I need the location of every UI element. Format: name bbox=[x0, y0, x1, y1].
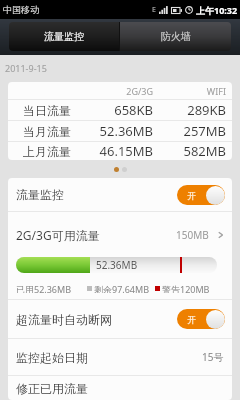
staticText: 流量监控 bbox=[44, 30, 84, 43]
button[interactable]: 流量监控 bbox=[8, 178, 232, 211]
staticText: 15号 bbox=[202, 350, 224, 364]
staticText: 289KB bbox=[153, 101, 226, 119]
button[interactable]: 开关 bbox=[177, 185, 225, 205]
button[interactable]: 超流量时自动断网 bbox=[8, 300, 232, 338]
staticText: 2G/3G bbox=[88, 85, 153, 97]
staticText: 开 bbox=[187, 190, 196, 201]
staticText: 上午10:32 bbox=[196, 4, 238, 16]
staticText: 开 bbox=[187, 314, 196, 325]
staticText: 当月流量 bbox=[23, 124, 88, 139]
button[interactable]: 防火墙 bbox=[120, 22, 231, 51]
staticText: 流量监控 bbox=[16, 187, 64, 202]
staticText: 52.36MB bbox=[88, 122, 153, 140]
staticText: 当日流量 bbox=[23, 103, 88, 118]
staticText: 已用52.36MB bbox=[16, 283, 72, 293]
staticText: 52.36MB bbox=[96, 258, 138, 272]
staticText: WIFI bbox=[153, 85, 226, 97]
staticText: 中国移动 bbox=[3, 4, 39, 15]
staticText: 257MB bbox=[153, 122, 226, 140]
button[interactable]: 2G/3G可用流量 bbox=[8, 212, 232, 299]
button[interactable]: 监控起始日期 bbox=[8, 339, 232, 375]
staticText: 修正已用流量 bbox=[16, 381, 88, 396]
button[interactable]: 流量监控 bbox=[9, 22, 119, 51]
staticText: 2G/3G可用流量 bbox=[16, 227, 100, 243]
staticText: E bbox=[152, 5, 156, 15]
staticText: 警告120MB bbox=[162, 283, 210, 293]
button[interactable]: 开关 bbox=[177, 309, 225, 329]
staticText: 46.15MB bbox=[88, 142, 153, 160]
staticText: 超流量时自动断网 bbox=[16, 312, 112, 327]
staticText: 2011-9-15 bbox=[5, 62, 47, 74]
staticText: 防火墙 bbox=[161, 30, 191, 43]
staticText: 上月流量 bbox=[23, 144, 88, 159]
staticText: 监控起始日期 bbox=[16, 350, 88, 365]
button[interactable]: 修正已用流量 bbox=[8, 376, 232, 400]
staticText: 150MB bbox=[176, 228, 209, 242]
staticText: 剩余97.64MB bbox=[94, 283, 150, 293]
staticText: 658KB bbox=[88, 101, 153, 119]
staticText: 582MB bbox=[153, 142, 226, 160]
